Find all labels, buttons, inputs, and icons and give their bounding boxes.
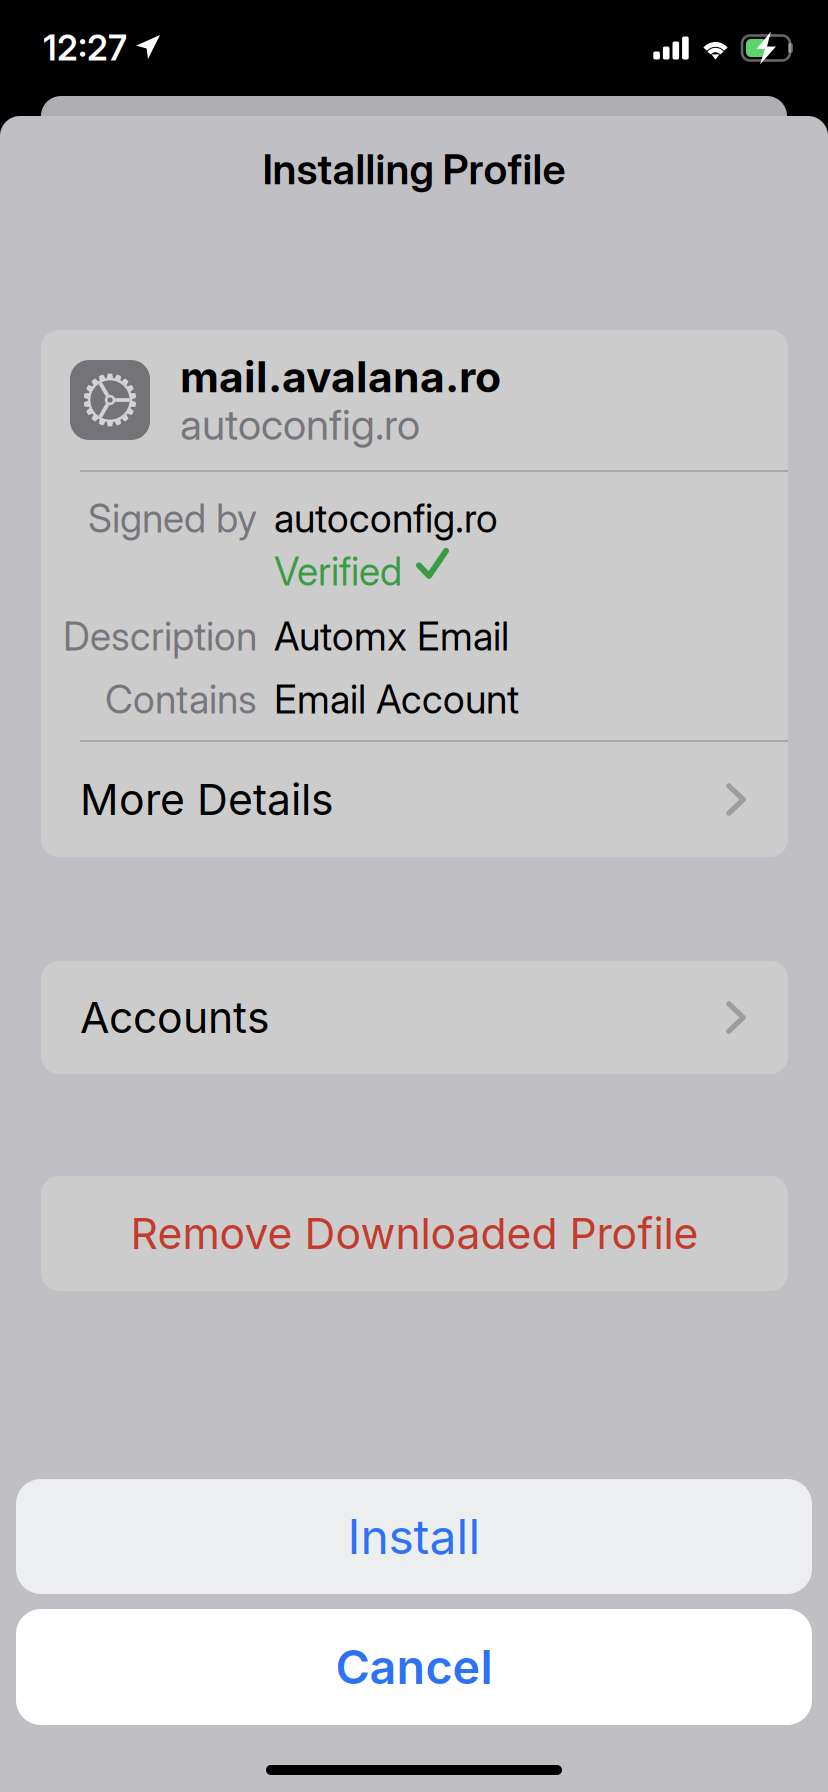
- staticText: 12:27: [43, 27, 127, 69]
- staticText: Cancel: [335, 1639, 492, 1695]
- staticText: Description: [63, 613, 257, 660]
- staticText: Email Account: [274, 676, 519, 723]
- staticText: Installing Profile: [262, 144, 565, 194]
- staticText: Accounts: [80, 992, 270, 1043]
- staticText: Signed by: [88, 495, 257, 542]
- staticText: autoconfig.ro: [180, 399, 420, 450]
- staticText: Automx Email: [274, 613, 509, 660]
- staticText: Install: [347, 1507, 480, 1566]
- button[interactable]: Install: [16, 1479, 812, 1594]
- staticText: Contains: [105, 676, 257, 723]
- button[interactable]: Cancel: [16, 1609, 812, 1725]
- button[interactable]: Accounts: [41, 961, 788, 1074]
- staticText: Remove Downloaded Profile: [130, 1208, 698, 1259]
- button[interactable]: Remove Downloaded Profile: [41, 1176, 788, 1291]
- button[interactable]: More Details: [41, 742, 788, 857]
- staticText: More Details: [80, 774, 334, 825]
- staticText: Verified: [274, 548, 402, 595]
- staticText: mail.avalana.ro: [180, 351, 501, 403]
- staticText: autoconfig.ro: [274, 495, 498, 542]
